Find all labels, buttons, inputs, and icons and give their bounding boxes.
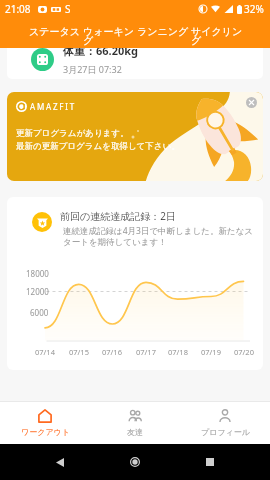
staticText: 最新の更新プログラムを取得して下さい。 [16,141,180,152]
staticText: 07/15 [69,347,89,357]
button[interactable]: ステータス [29,18,83,48]
button[interactable]: 前回の連続達成記録：2日 [7,197,263,370]
staticText: 07/16 [102,347,122,357]
staticText: 12000 [26,286,49,297]
staticText: ランニング [137,25,190,38]
button[interactable]: 友達 [90,402,180,444]
staticText: ワークアウト [21,427,70,437]
staticText: S [65,2,71,16]
button[interactable]: サイクリング [191,18,245,48]
staticText: AMAZFIT [30,101,76,112]
staticText: 07/17 [136,347,156,357]
staticText: 32% [244,2,264,16]
button[interactable]: Recents [195,447,225,477]
button[interactable]: Home [120,447,150,477]
button[interactable]: 体重：66.20kg [7,39,263,79]
staticText: 07/19 [201,347,221,357]
button[interactable]: AMAZFIT [7,92,263,181]
staticText: ステータス [29,25,82,38]
staticText: 18000 [26,268,49,279]
staticText: 更新プログラムがあります。 [16,128,129,139]
button[interactable]: プロフィール [180,402,270,444]
staticText: 前回の連続達成記録：2日 [60,209,176,223]
staticText: 体重：66.20kg [63,43,139,58]
button[interactable]: Close [246,97,257,108]
staticText: 21:08 [5,2,31,16]
staticText: 07/20 [234,347,254,357]
staticText: 07/14 [35,347,55,357]
staticText: 07/18 [168,347,188,357]
staticText: ウォーキング [83,25,136,47]
button[interactable]: Back [45,447,75,477]
staticText: 友達 [127,427,143,437]
button[interactable]: ランニング [137,18,191,48]
staticText: 連続達成記録は4月3日で中断しました。新たなスタートを期待しています！ [63,225,255,247]
button[interactable]: ウォーキング [83,18,137,48]
staticText: 6000 [30,307,49,318]
staticText: サイクリング [191,25,244,47]
button[interactable]: ワークアウト [0,402,90,444]
staticText: 3月27日 07:32 [63,63,122,75]
staticText: プロフィール [201,427,250,437]
